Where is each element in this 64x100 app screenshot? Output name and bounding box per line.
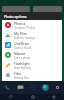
staticText: Save to cloud: [14, 46, 31, 50]
staticText: Flashlight: [14, 61, 30, 66]
button[interactable]: Photos: [2, 20, 62, 30]
staticText: Files: [14, 71, 22, 76]
staticText: Browse files: [14, 76, 30, 80]
button[interactable]: Back: [0, 94, 22, 100]
staticText: Photo options: [4, 14, 27, 19]
staticText: Explore, manage: [14, 36, 36, 40]
staticText: Nature: [14, 51, 26, 56]
staticText: Start flashing: [14, 66, 31, 70]
button[interactable]: Photo options: [2, 12, 62, 20]
staticText: Dropbox, Photos: [14, 26, 36, 30]
button[interactable]: Apps: [27, 81, 39, 94]
button[interactable]: Files: [2, 70, 62, 80]
staticText: Scan a photo: [14, 56, 31, 60]
button[interactable]: My Files: [2, 30, 62, 40]
button[interactable]: Camera: [51, 81, 63, 94]
button[interactable]: Flashlight: [2, 60, 62, 70]
button[interactable]: Browser: [39, 81, 51, 94]
button[interactable]: Nature: [2, 50, 62, 60]
staticText: OneDrive: [14, 41, 30, 46]
button[interactable]: Phone: [1, 81, 14, 94]
button[interactable]: Messages: [14, 81, 27, 94]
button[interactable]: Home: [22, 94, 43, 100]
staticText: Photos: [14, 21, 26, 26]
button[interactable]: Recents: [43, 94, 64, 100]
button[interactable]: OneDrive: [2, 40, 62, 50]
staticText: My Files: [14, 31, 27, 36]
